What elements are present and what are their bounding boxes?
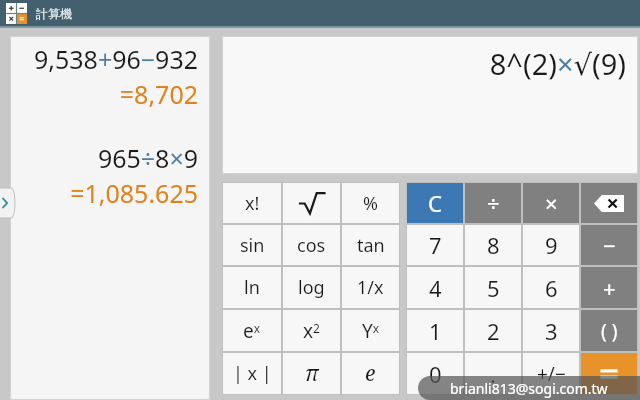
button[interactable]: ÷ <box>465 183 521 223</box>
staticText: =1,085.625 <box>70 176 198 210</box>
staticText: + <box>603 273 616 303</box>
button[interactable]: Open history drawer <box>0 188 13 218</box>
staticText: 1/x <box>357 275 384 300</box>
button[interactable]: 3 <box>523 310 579 351</box>
staticText: 8 <box>487 230 500 260</box>
button[interactable]: Backspace <box>581 183 637 223</box>
button[interactable]: Square root <box>283 183 340 223</box>
staticText: cos <box>297 233 326 258</box>
staticText: C <box>428 188 442 218</box>
staticText: +/− <box>537 361 566 387</box>
button[interactable]: cos <box>283 225 340 265</box>
staticText: ( ) <box>601 318 618 344</box>
button[interactable]: ln <box>223 267 281 308</box>
staticText: x2 <box>303 318 320 344</box>
button[interactable]: sin <box>223 225 281 265</box>
staticText: 0 <box>429 359 442 389</box>
button[interactable]: x2 <box>283 310 340 351</box>
staticText: tan <box>357 233 385 258</box>
button[interactable]: . <box>465 353 521 394</box>
staticText: =8,702 <box>119 77 198 111</box>
staticText: ÷ <box>487 188 500 218</box>
staticText: ex <box>243 318 261 344</box>
button[interactable]: | x | <box>223 353 281 394</box>
button[interactable]: 8^(2)×√(9) <box>222 36 638 174</box>
staticText: π <box>305 359 319 388</box>
button[interactable]: x! <box>223 183 281 223</box>
other: Equals <box>596 361 622 387</box>
button[interactable]: + <box>581 267 637 308</box>
button[interactable]: log <box>283 267 340 308</box>
button[interactable]: ( ) <box>581 310 637 351</box>
button[interactable]: − <box>581 225 637 265</box>
button[interactable]: 6 <box>523 267 579 308</box>
staticText: 9,538+96−932 <box>33 42 198 76</box>
button[interactable]: Equals <box>581 353 637 394</box>
staticText: 6 <box>545 273 558 303</box>
button[interactable]: 8 <box>465 225 521 265</box>
staticText: 7 <box>429 230 442 260</box>
button[interactable]: 9 <box>523 225 579 265</box>
other: Square root <box>299 190 325 216</box>
button[interactable]: 7 <box>407 225 463 265</box>
button[interactable]: tan <box>342 225 399 265</box>
staticText: % <box>363 191 378 216</box>
staticText: x! <box>245 191 260 216</box>
button[interactable]: 1/x <box>342 267 399 308</box>
staticText: 965÷8×9 <box>97 141 198 175</box>
button[interactable]: 0 <box>407 353 463 394</box>
staticText: 2 <box>487 316 500 346</box>
button[interactable]: 4 <box>407 267 463 308</box>
staticText: log <box>298 275 325 300</box>
staticText: 5 <box>487 273 500 303</box>
button[interactable]: 5 <box>465 267 521 308</box>
staticText: | x | <box>233 361 272 386</box>
staticText: sin <box>240 233 265 258</box>
button[interactable]: +/− <box>523 353 579 394</box>
staticText: . <box>490 359 496 389</box>
button[interactable]: e <box>342 353 399 394</box>
staticText: 計算機 <box>36 6 72 21</box>
button[interactable]: ex <box>223 310 281 351</box>
button[interactable]: 2 <box>465 310 521 351</box>
button[interactable]: 1 <box>407 310 463 351</box>
button[interactable]: × <box>523 183 579 223</box>
staticText: Yx <box>362 318 380 344</box>
button[interactable]: 9,538+96−932 <box>10 36 210 400</box>
staticText: 4 <box>429 273 442 303</box>
other: Calculator icon <box>6 3 27 24</box>
staticText: e <box>365 359 376 388</box>
staticText: 1 <box>429 316 442 346</box>
staticText: brianli813@sogi.com.tw <box>450 379 608 398</box>
button[interactable]: C <box>407 183 463 223</box>
staticText: 3 <box>545 316 558 346</box>
staticText: ln <box>244 275 260 300</box>
button[interactable]: Yx <box>342 310 399 351</box>
staticText: × <box>545 188 558 218</box>
staticText: − <box>603 230 616 260</box>
staticText: 9 <box>545 230 558 260</box>
button[interactable]: % <box>342 183 399 223</box>
staticText: 8^(2)×√(9) <box>489 44 626 83</box>
button[interactable]: π <box>283 353 340 394</box>
